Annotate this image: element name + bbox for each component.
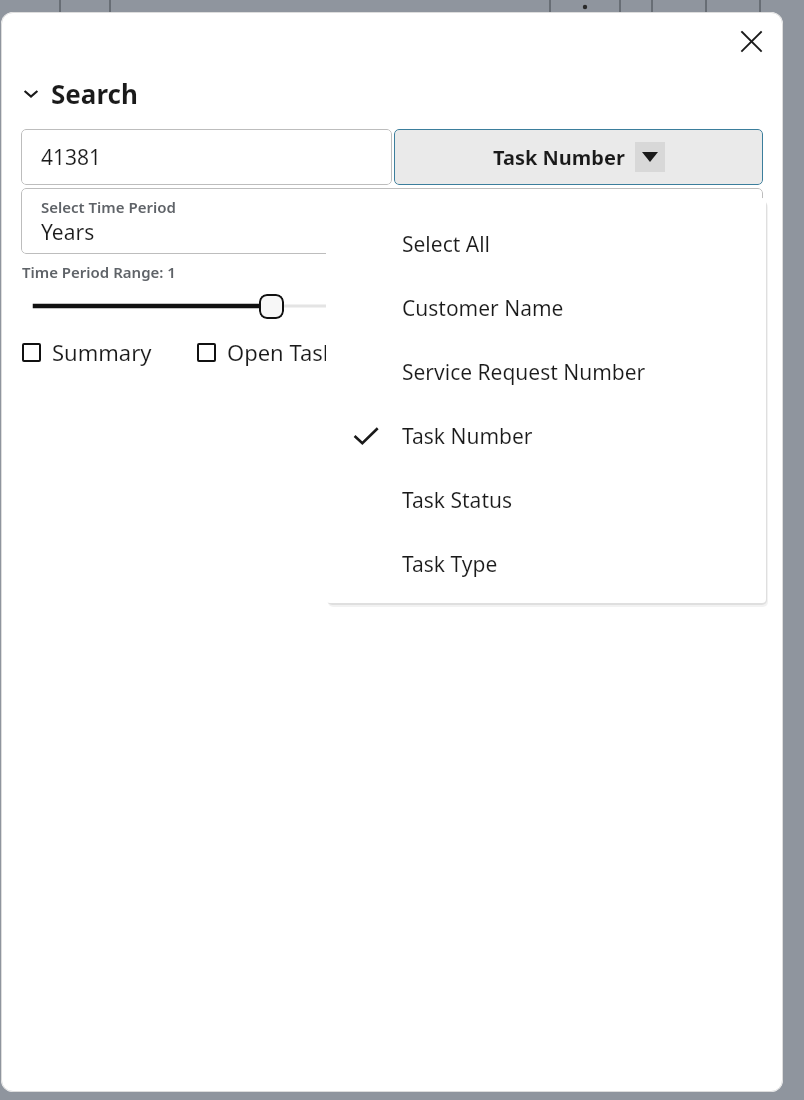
staticText: Task Number — [402, 422, 533, 451]
button[interactable]: Service Request Number — [326, 340, 766, 404]
button[interactable]: Task Status — [326, 468, 766, 532]
staticText: Open Tasks — [227, 337, 346, 367]
button[interactable]: Close — [729, 19, 773, 63]
staticText: Task Status — [402, 486, 513, 515]
button[interactable]: Customer Name — [326, 276, 766, 340]
button[interactable]: 41381 — [21, 129, 392, 185]
button[interactable] — [35, 291, 749, 321]
staticText: Task Type — [402, 550, 498, 579]
staticText: Customer Name — [402, 294, 564, 323]
button[interactable]: Task Number — [394, 129, 763, 185]
staticText: Task Number — [493, 144, 625, 171]
staticText: Select All — [402, 230, 491, 259]
button[interactable]: Task Number — [326, 404, 766, 468]
button[interactable]: Summary — [22, 335, 152, 369]
staticText: Search — [51, 76, 138, 111]
button[interactable]: Task Type — [326, 532, 766, 596]
button[interactable]: Open Tasks — [197, 335, 346, 369]
staticText: Summary — [52, 337, 152, 367]
button[interactable]: Search — [21, 70, 138, 116]
staticText: Service Request Number — [402, 358, 646, 387]
button[interactable]: Select Time Period — [21, 188, 763, 254]
button[interactable]: Select All — [326, 212, 766, 276]
staticText: Years — [41, 218, 95, 247]
staticText: 41381 — [41, 143, 102, 172]
staticText: Time Period Range: 1 — [22, 262, 176, 282]
staticText: Select Time Period — [41, 197, 176, 217]
